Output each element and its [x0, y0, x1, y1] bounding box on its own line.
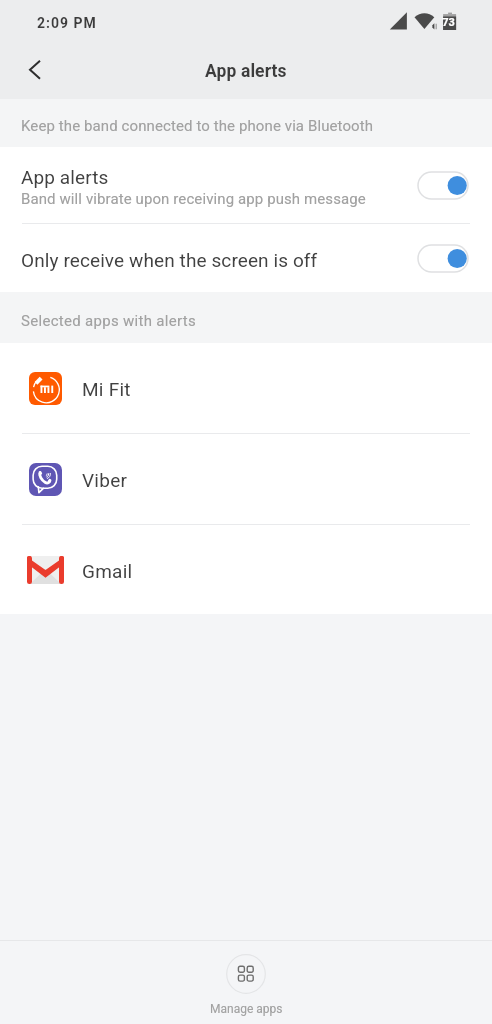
staticText: Selected apps with alerts	[21, 312, 196, 330]
staticText: Only receive when the screen is off	[21, 249, 318, 271]
staticText: Mi Fit	[82, 378, 131, 400]
button[interactable]: Toggle	[418, 172, 468, 199]
button[interactable]: Manage apps	[186, 950, 306, 1016]
staticText: 73	[442, 16, 455, 29]
button[interactable]: App alerts	[0, 147, 492, 223]
staticText: App alerts	[21, 166, 109, 188]
staticText: App alerts	[205, 61, 287, 82]
button[interactable]: Gmail	[0, 525, 492, 614]
staticText: Viber	[82, 469, 128, 491]
staticText: Keep the band connected to the phone via…	[21, 117, 374, 135]
button[interactable]: Back	[9, 44, 61, 96]
button[interactable]: Viber	[0, 434, 492, 524]
button[interactable]: Mi Fit	[0, 343, 492, 433]
staticText: Manage apps	[210, 1002, 283, 1016]
button[interactable]: Toggle	[418, 245, 468, 272]
staticText: Gmail	[82, 560, 133, 582]
staticText: 2:09 PM	[37, 15, 97, 31]
staticText: Band will vibrate upon receiving app pus…	[21, 190, 366, 208]
button[interactable]: Only receive when the screen is off	[0, 224, 492, 292]
